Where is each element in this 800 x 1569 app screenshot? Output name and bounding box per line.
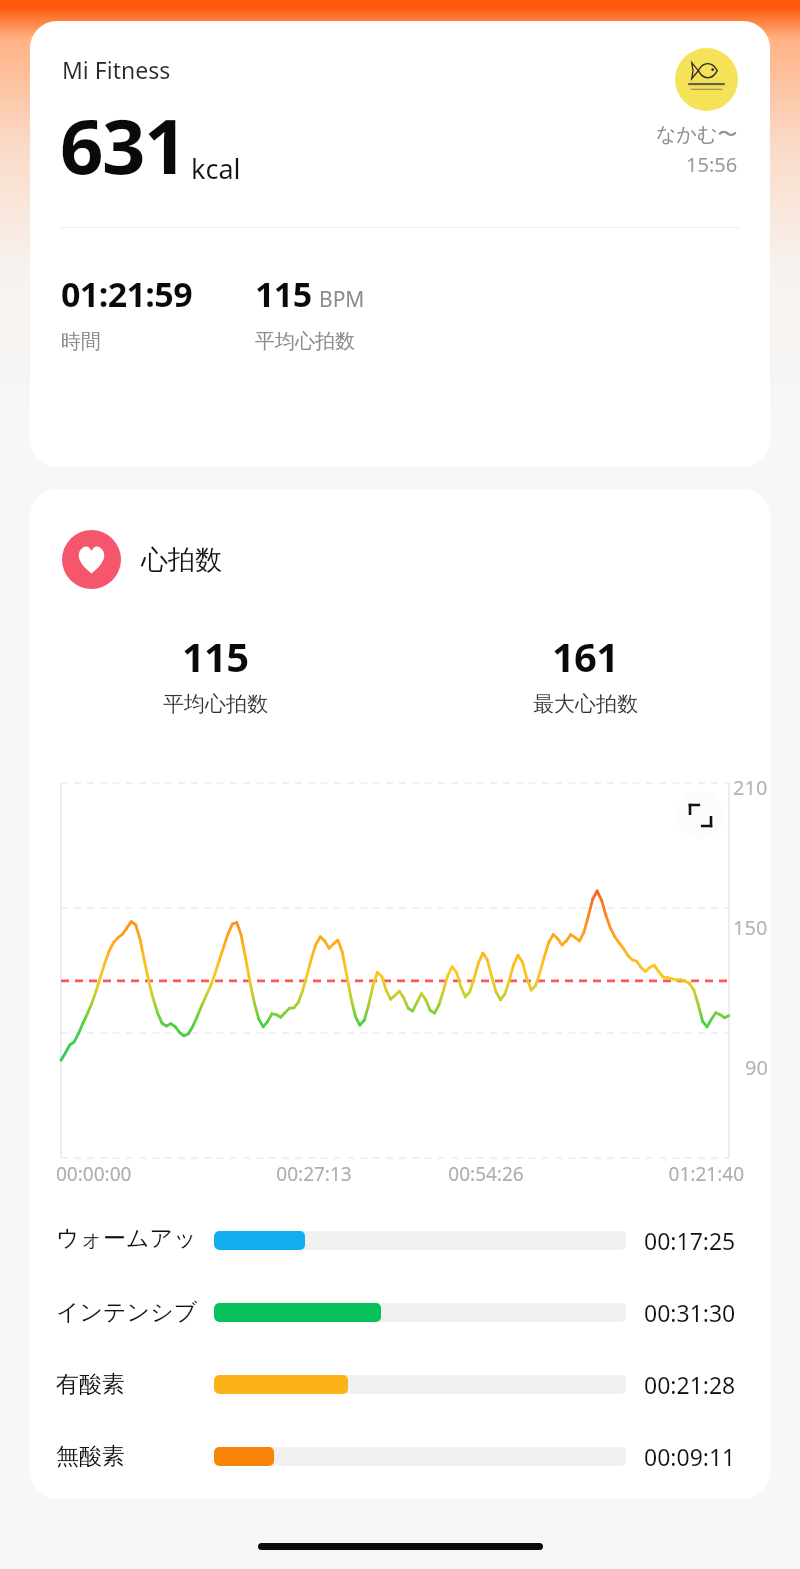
staticText: 時間 [61,329,101,354]
staticText: 00:27:13 [228,1161,400,1187]
staticText: 161 [552,629,619,683]
button[interactable]: 心拍数 [30,530,770,589]
staticText: 00:17:25 [644,1225,736,1256]
staticText: 150 [733,914,768,941]
button[interactable]: 161 [400,629,770,717]
staticText: 01:21:40 [572,1161,744,1187]
staticText: 平均心拍数 [255,329,355,354]
staticText: 最大心拍数 [533,691,638,717]
staticText: 00:21:28 [644,1369,736,1400]
button[interactable]: Mi Fitness [30,21,770,467]
staticText: 15:56 [686,151,738,178]
button[interactable]: 115 [30,629,400,717]
staticText: 90 [745,1054,768,1081]
staticText: なかむ〜 [656,122,738,147]
button[interactable]: 有酸素 [30,1368,770,1400]
staticText: ウォームアップ [56,1224,208,1256]
button[interactable]: 無酸素 [30,1440,770,1472]
staticText: 00:54:26 [400,1161,572,1187]
staticText: 心拍数 [141,543,222,577]
staticText: 00:09:11 [644,1441,736,1472]
staticText: 631 [60,93,186,197]
staticText: インテンシブ [56,1298,198,1327]
staticText: 115 [255,271,312,317]
staticText: 01:21:59 [61,271,192,317]
staticText: 00:31:30 [644,1297,736,1328]
staticText: 有酸素 [56,1370,125,1399]
staticText: kcal [191,150,241,187]
staticText: 210 [733,774,768,801]
button[interactable]: Expand chart [676,791,724,839]
staticText: BPM [319,285,365,314]
staticText: Mi Fitness [62,54,171,85]
button[interactable]: Profile avatar [675,48,738,111]
button[interactable]: インテンシブ [30,1296,770,1328]
staticText: 平均心拍数 [163,691,268,717]
staticText: 115 [182,629,249,683]
staticText: 00:00:00 [56,1161,228,1187]
button[interactable]: ウォームアップ [30,1224,770,1256]
staticText: 無酸素 [56,1442,125,1471]
